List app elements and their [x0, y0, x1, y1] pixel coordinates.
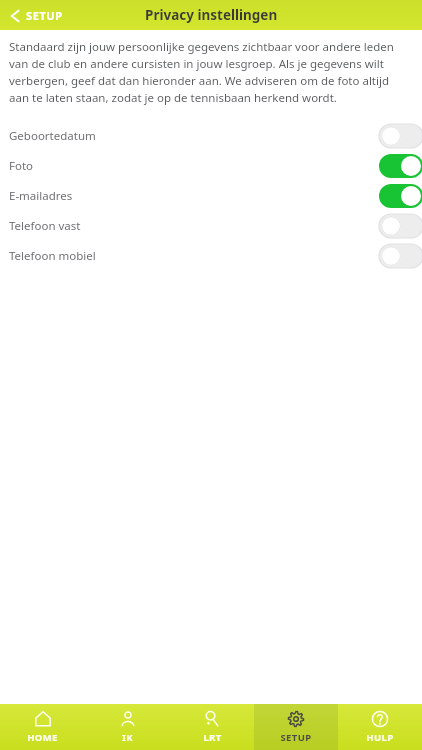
- staticText: SETUP: [280, 731, 312, 744]
- button[interactable]: HOME: [0, 704, 85, 750]
- staticText: Privacy instellingen: [145, 6, 278, 24]
- staticText: LRT: [203, 731, 222, 744]
- button[interactable]: E-mailadres: [0, 181, 422, 211]
- staticText: Foto: [9, 158, 34, 174]
- staticText: Geboortedatum: [9, 128, 96, 144]
- button[interactable]: Geboortedatum: [0, 121, 422, 151]
- staticText: Telefoon vast: [9, 218, 81, 234]
- button[interactable]: SETUP: [254, 704, 338, 750]
- button[interactable]: SETUP: [0, 4, 73, 27]
- staticText: SETUP: [26, 8, 63, 23]
- button[interactable]: Telefoon vast: [0, 211, 422, 241]
- button[interactable]: Foto: [0, 151, 422, 181]
- staticText: IK: [122, 731, 133, 744]
- button[interactable]: IK: [85, 704, 170, 750]
- staticText: HULP: [366, 731, 394, 744]
- staticText: HOME: [27, 731, 58, 744]
- staticText: Telefoon mobiel: [9, 248, 96, 264]
- staticText: E-mailadres: [9, 188, 73, 204]
- staticText: Standaard zijn jouw persoonlijke gegeven…: [9, 39, 410, 106]
- button[interactable]: HULP: [338, 704, 422, 750]
- button[interactable]: LRT: [170, 704, 254, 750]
- button[interactable]: Telefoon mobiel: [0, 241, 422, 271]
